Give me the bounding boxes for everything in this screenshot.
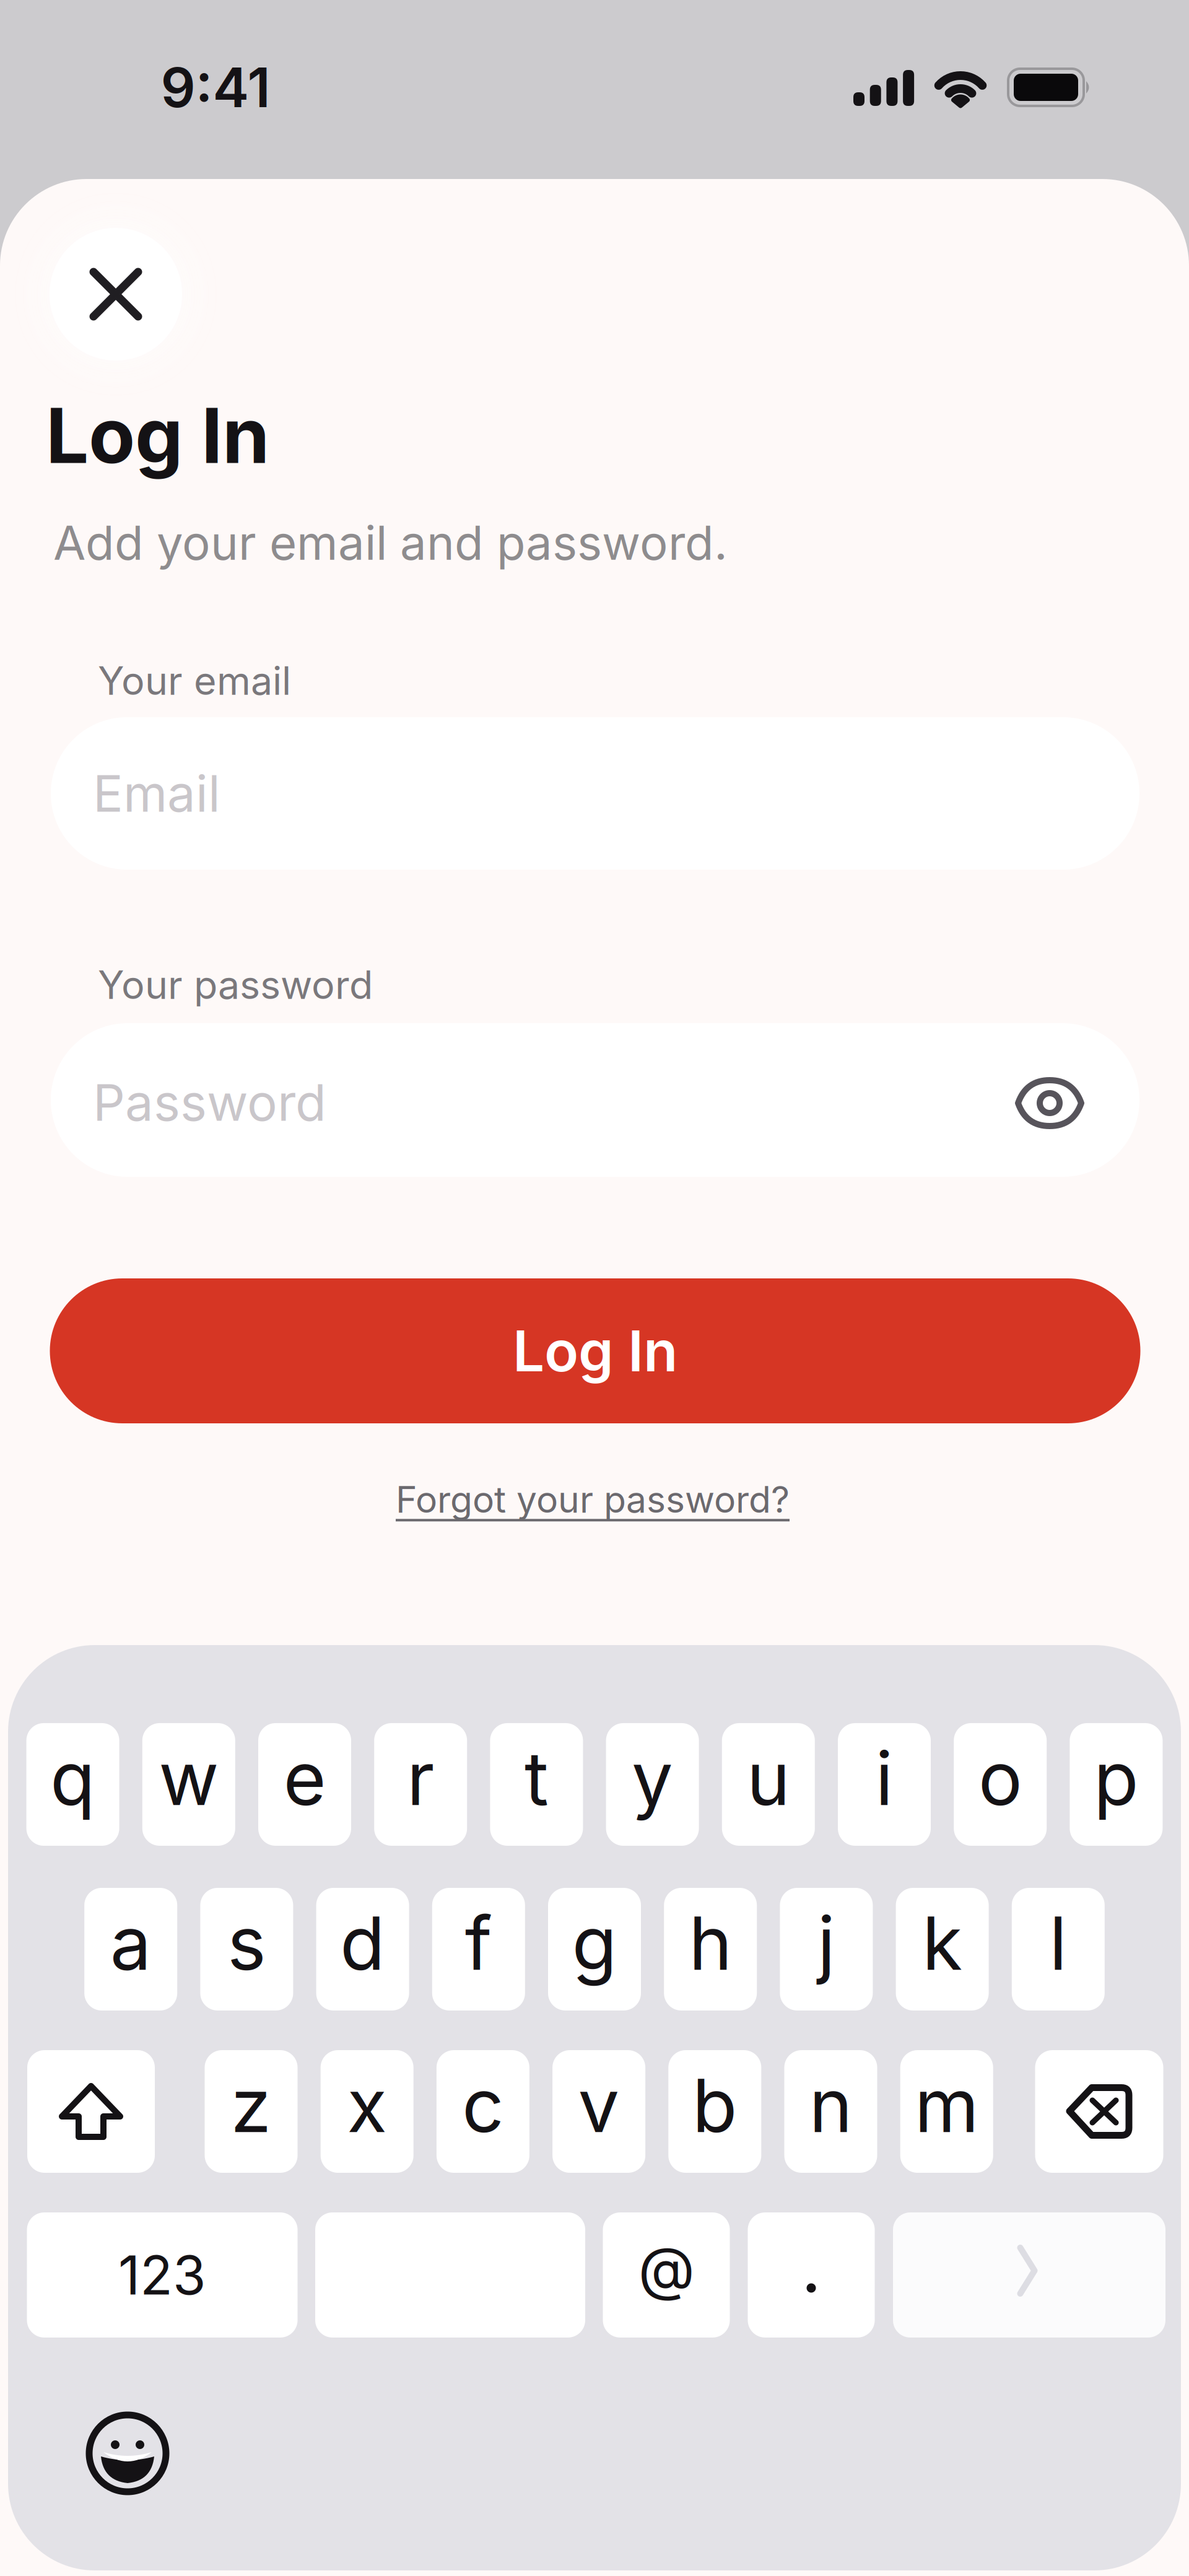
staticText: v — [578, 2062, 620, 2149]
button[interactable]: Shift — [27, 2050, 155, 2173]
staticText: Forgot your password? — [396, 1478, 790, 1521]
staticText: c — [462, 2062, 504, 2149]
button[interactable]: p — [1070, 1723, 1163, 1846]
button[interactable]: Delete — [1035, 2050, 1163, 2173]
staticText: 123 — [118, 2243, 206, 2307]
staticText: Password — [93, 1073, 326, 1132]
staticText: o — [978, 1735, 1022, 1822]
button[interactable]: Log In — [50, 1278, 1140, 1423]
button[interactable]: Show password — [1003, 1060, 1096, 1146]
button[interactable]: m — [900, 2050, 993, 2173]
button[interactable]: q — [26, 1723, 119, 1846]
button[interactable]: Space — [315, 2212, 585, 2338]
staticText: b — [692, 2062, 737, 2149]
button[interactable]: i — [838, 1723, 931, 1846]
button[interactable]: a — [84, 1888, 177, 2011]
staticText: g — [572, 1900, 617, 1986]
button[interactable]: v — [552, 2050, 645, 2173]
staticText: i — [875, 1735, 893, 1822]
button[interactable]: n — [784, 2050, 877, 2173]
button[interactable]: e — [258, 1723, 351, 1846]
button[interactable]: Numbers — [27, 2212, 298, 2338]
button[interactable]: Close — [50, 228, 182, 360]
staticText: f — [465, 1900, 492, 1986]
staticText: w — [159, 1735, 219, 1822]
button[interactable]: d — [316, 1888, 409, 2011]
staticText: n — [809, 2062, 852, 2149]
button[interactable]: Period — [748, 2212, 875, 2338]
staticText: y — [632, 1735, 673, 1822]
button[interactable]: u — [722, 1723, 815, 1846]
staticText: m — [914, 2062, 979, 2149]
staticText: z — [231, 2062, 272, 2149]
button[interactable]: r — [374, 1723, 467, 1846]
button[interactable]: z — [205, 2050, 298, 2173]
staticText: h — [689, 1900, 732, 1986]
staticText: u — [747, 1735, 790, 1822]
button[interactable]: g — [548, 1888, 641, 2011]
staticText: 9:41 — [161, 55, 270, 119]
button[interactable]: Password — [51, 1023, 1139, 1177]
staticText: e — [283, 1735, 326, 1822]
button[interactable]: t — [490, 1723, 583, 1846]
button[interactable]: w — [142, 1723, 235, 1846]
button[interactable]: y — [606, 1723, 699, 1846]
staticText: k — [922, 1900, 962, 1986]
button[interactable]: b — [668, 2050, 761, 2173]
staticText: Add your email and password. — [53, 515, 728, 570]
staticText: t — [524, 1735, 549, 1822]
button[interactable]: Emoji — [87, 2412, 168, 2494]
staticText: a — [110, 1900, 152, 1986]
button[interactable]: c — [437, 2050, 529, 2173]
staticText: Your email — [98, 658, 291, 704]
button[interactable]: l — [1012, 1888, 1105, 2011]
staticText: Log In — [513, 1318, 677, 1384]
button[interactable]: @ — [603, 2212, 730, 2338]
staticText: Your password — [98, 962, 373, 1008]
button[interactable]: x — [321, 2050, 413, 2173]
button[interactable]: k — [896, 1888, 989, 2011]
staticText: d — [340, 1900, 385, 1986]
button[interactable]: f — [432, 1888, 525, 2011]
staticText: x — [347, 2062, 387, 2149]
button[interactable]: Forgot your password? — [396, 1478, 790, 1521]
staticText: @ — [638, 2234, 695, 2303]
button[interactable]: o — [954, 1723, 1047, 1846]
staticText: p — [1094, 1735, 1139, 1822]
staticText: l — [1049, 1900, 1067, 1986]
staticText: Email — [93, 764, 220, 823]
staticText: s — [227, 1900, 266, 1986]
staticText: q — [50, 1735, 95, 1822]
button[interactable]: Return — [893, 2212, 1165, 2338]
button[interactable]: j — [780, 1888, 873, 2011]
staticText: r — [407, 1735, 435, 1822]
staticText: Log In — [46, 391, 269, 480]
staticText: j — [817, 1900, 835, 1986]
button[interactable]: Email — [51, 717, 1139, 870]
button[interactable]: s — [200, 1888, 293, 2011]
button[interactable]: h — [664, 1888, 757, 2011]
